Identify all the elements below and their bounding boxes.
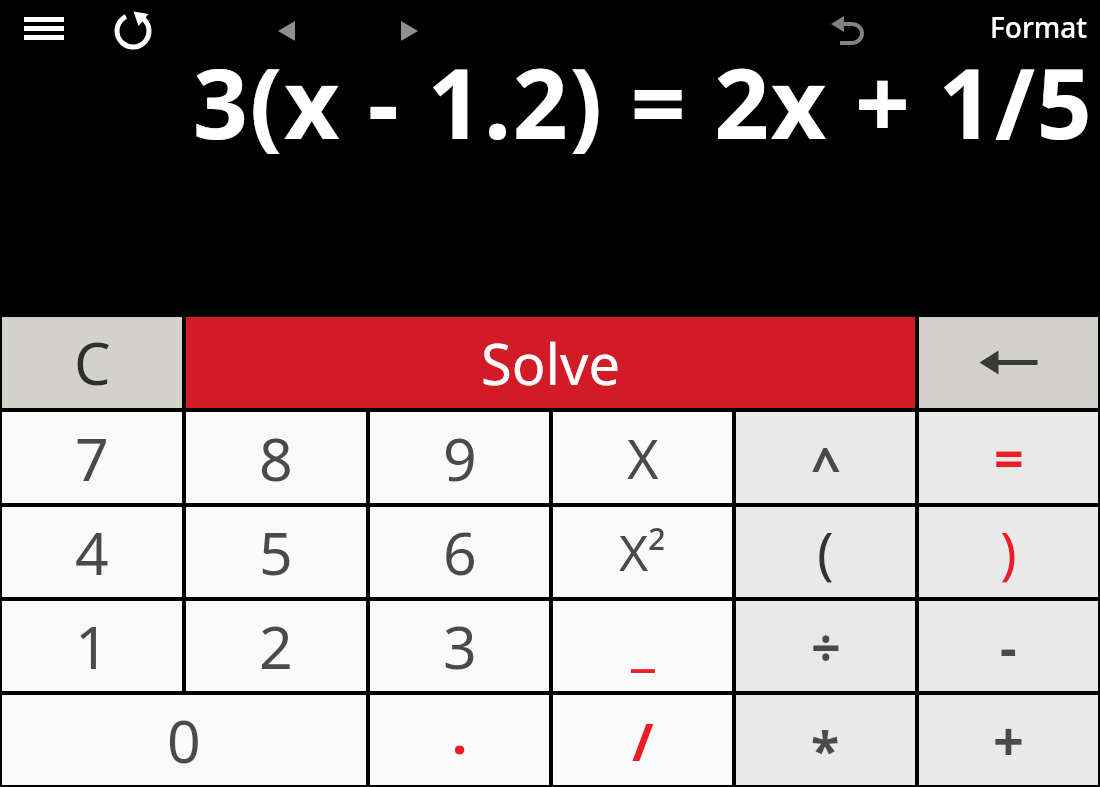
- staticText: (: [817, 514, 834, 590]
- button[interactable]: [919, 317, 1098, 408]
- staticText: .: [452, 696, 468, 770]
- button[interactable]: X: [553, 412, 732, 503]
- button[interactable]: 0: [2, 695, 366, 785]
- button[interactable]: 2: [186, 601, 366, 691]
- button[interactable]: +: [919, 695, 1098, 785]
- button[interactable]: [389, 9, 433, 53]
- button[interactable]: Format: [990, 8, 1087, 46]
- staticText: +: [993, 703, 1024, 777]
- staticText: 4: [75, 512, 109, 592]
- button[interactable]: 3: [370, 601, 549, 691]
- staticText: 3(x - 1.2) = 2x + 1/5: [193, 36, 1094, 167]
- button[interactable]: [823, 7, 871, 55]
- button[interactable]: 8: [186, 412, 366, 503]
- button[interactable]: C: [2, 317, 182, 408]
- staticText: Solve: [481, 325, 621, 401]
- staticText: 2: [259, 606, 293, 686]
- button[interactable]: /: [553, 695, 732, 785]
- button[interactable]: [107, 5, 159, 57]
- button[interactable]: 5: [186, 507, 366, 597]
- button[interactable]: _: [553, 601, 732, 691]
- staticText: 0: [167, 700, 201, 780]
- staticText: 3: [443, 606, 477, 686]
- staticText: =: [994, 422, 1024, 493]
- staticText: C: [74, 323, 111, 402]
- button[interactable]: 7: [2, 412, 182, 503]
- button[interactable]: Solve: [186, 317, 915, 408]
- button[interactable]: .: [370, 695, 549, 785]
- staticText: ^: [811, 429, 841, 500]
- button[interactable]: 6: [370, 507, 549, 597]
- button[interactable]: ÷: [736, 601, 915, 691]
- staticText: 1: [75, 606, 109, 686]
- staticText: X: [627, 421, 659, 495]
- staticText: 7: [75, 418, 109, 498]
- button[interactable]: [266, 9, 310, 53]
- button[interactable]: ^: [736, 412, 915, 503]
- button[interactable]: X²: [553, 507, 732, 597]
- button[interactable]: 4: [2, 507, 182, 597]
- button[interactable]: *: [736, 695, 915, 785]
- staticText: 9: [443, 418, 477, 498]
- staticText: ): [1000, 514, 1017, 590]
- staticText: 8: [259, 418, 293, 498]
- staticText: 5: [259, 512, 293, 592]
- staticText: X²: [619, 518, 666, 586]
- button[interactable]: 9: [370, 412, 549, 503]
- staticText: _: [631, 602, 655, 681]
- staticText: -: [1000, 611, 1017, 682]
- staticText: *: [811, 714, 840, 785]
- staticText: Format: [990, 8, 1087, 46]
- button[interactable]: 1: [2, 601, 182, 691]
- button[interactable]: ): [919, 507, 1098, 597]
- staticText: 6: [443, 512, 477, 592]
- staticText: /: [632, 705, 654, 776]
- button[interactable]: [14, 6, 74, 54]
- button[interactable]: -: [919, 601, 1098, 691]
- button[interactable]: (: [736, 507, 915, 597]
- button[interactable]: =: [919, 412, 1098, 503]
- staticText: ÷: [811, 611, 841, 682]
